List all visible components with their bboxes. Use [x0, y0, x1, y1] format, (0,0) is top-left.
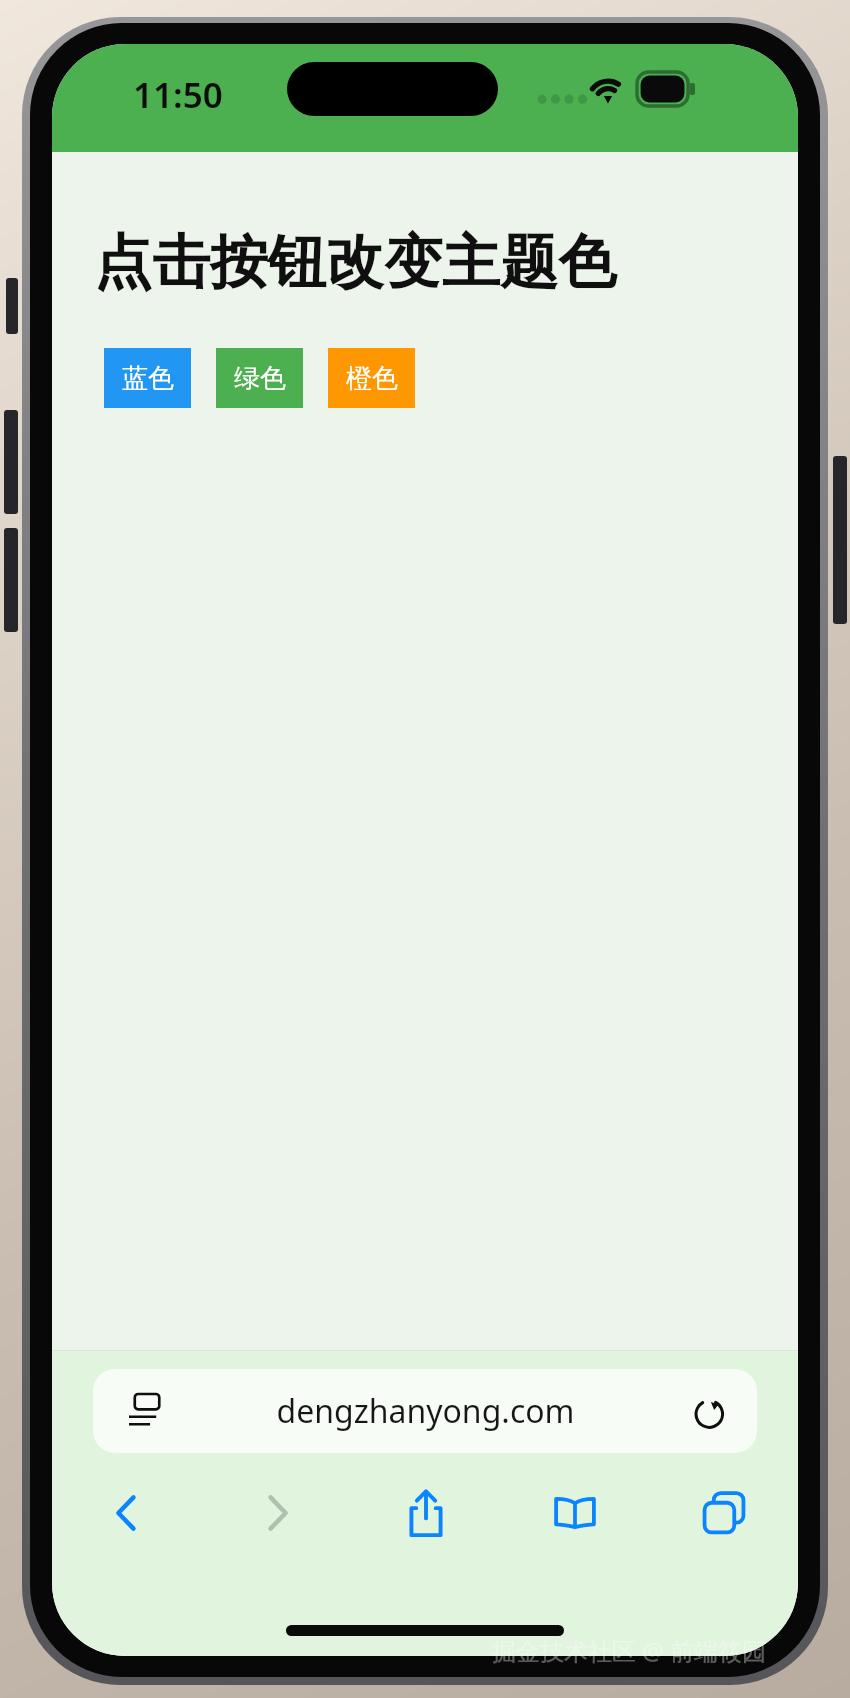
button[interactable]: Tabs	[649, 1469, 798, 1557]
staticText: 蓝色	[122, 362, 174, 395]
button[interactable]: Bookmarks	[500, 1469, 649, 1557]
staticText: dengzhanyong.com	[276, 1389, 575, 1433]
staticText: 绿色	[234, 362, 286, 395]
button[interactable]: Back	[52, 1469, 202, 1557]
other: Page settings	[129, 1394, 163, 1428]
staticText: 掘金技术社区 @ 前端筱园	[492, 1634, 767, 1667]
button[interactable]: 橙色	[328, 348, 415, 408]
button[interactable]: 绿色	[216, 348, 303, 408]
staticText: 点击按钮改变主题色	[94, 226, 616, 299]
staticText: 11:50	[133, 71, 223, 119]
button[interactable]: Share	[351, 1469, 500, 1557]
staticText: 橙色	[346, 362, 398, 395]
other: Reload	[693, 1393, 727, 1430]
button[interactable]: Forward	[202, 1469, 351, 1557]
button[interactable]: 蓝色	[104, 348, 191, 408]
button[interactable]: Page settings	[93, 1369, 757, 1453]
